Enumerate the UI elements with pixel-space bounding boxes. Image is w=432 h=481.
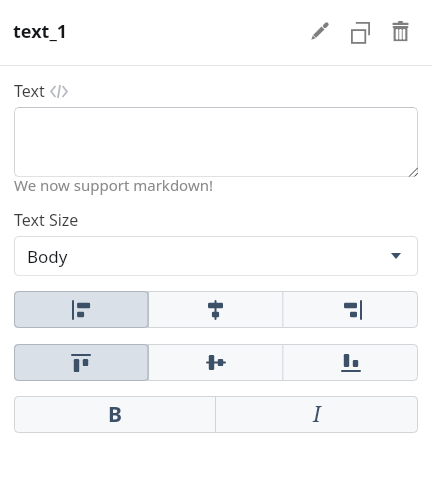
button[interactable]: Delete — [380, 11, 420, 51]
staticText: Text — [14, 80, 45, 102]
button[interactable]: Align center — [148, 291, 283, 328]
button[interactable]: Italic — [216, 396, 418, 433]
staticText: text_1 — [13, 19, 68, 44]
button[interactable]: Duplicate — [340, 11, 380, 51]
staticText: Text Size — [14, 209, 79, 231]
button[interactable]: Align middle — [148, 344, 283, 381]
button[interactable]: Bold — [14, 396, 216, 433]
button[interactable]: Align bottom — [283, 344, 418, 381]
button[interactable]: Text input — [14, 107, 418, 177]
staticText: Body — [27, 245, 68, 268]
staticText: I — [313, 400, 321, 429]
button[interactable]: Align right — [283, 291, 418, 328]
staticText: We now support markdown! — [14, 175, 213, 195]
staticText: B — [108, 400, 122, 429]
button[interactable]: Edit — [300, 11, 340, 51]
button[interactable]: Body — [14, 236, 418, 276]
button[interactable]: Align left — [14, 291, 148, 328]
button[interactable]: Align top — [14, 344, 148, 381]
